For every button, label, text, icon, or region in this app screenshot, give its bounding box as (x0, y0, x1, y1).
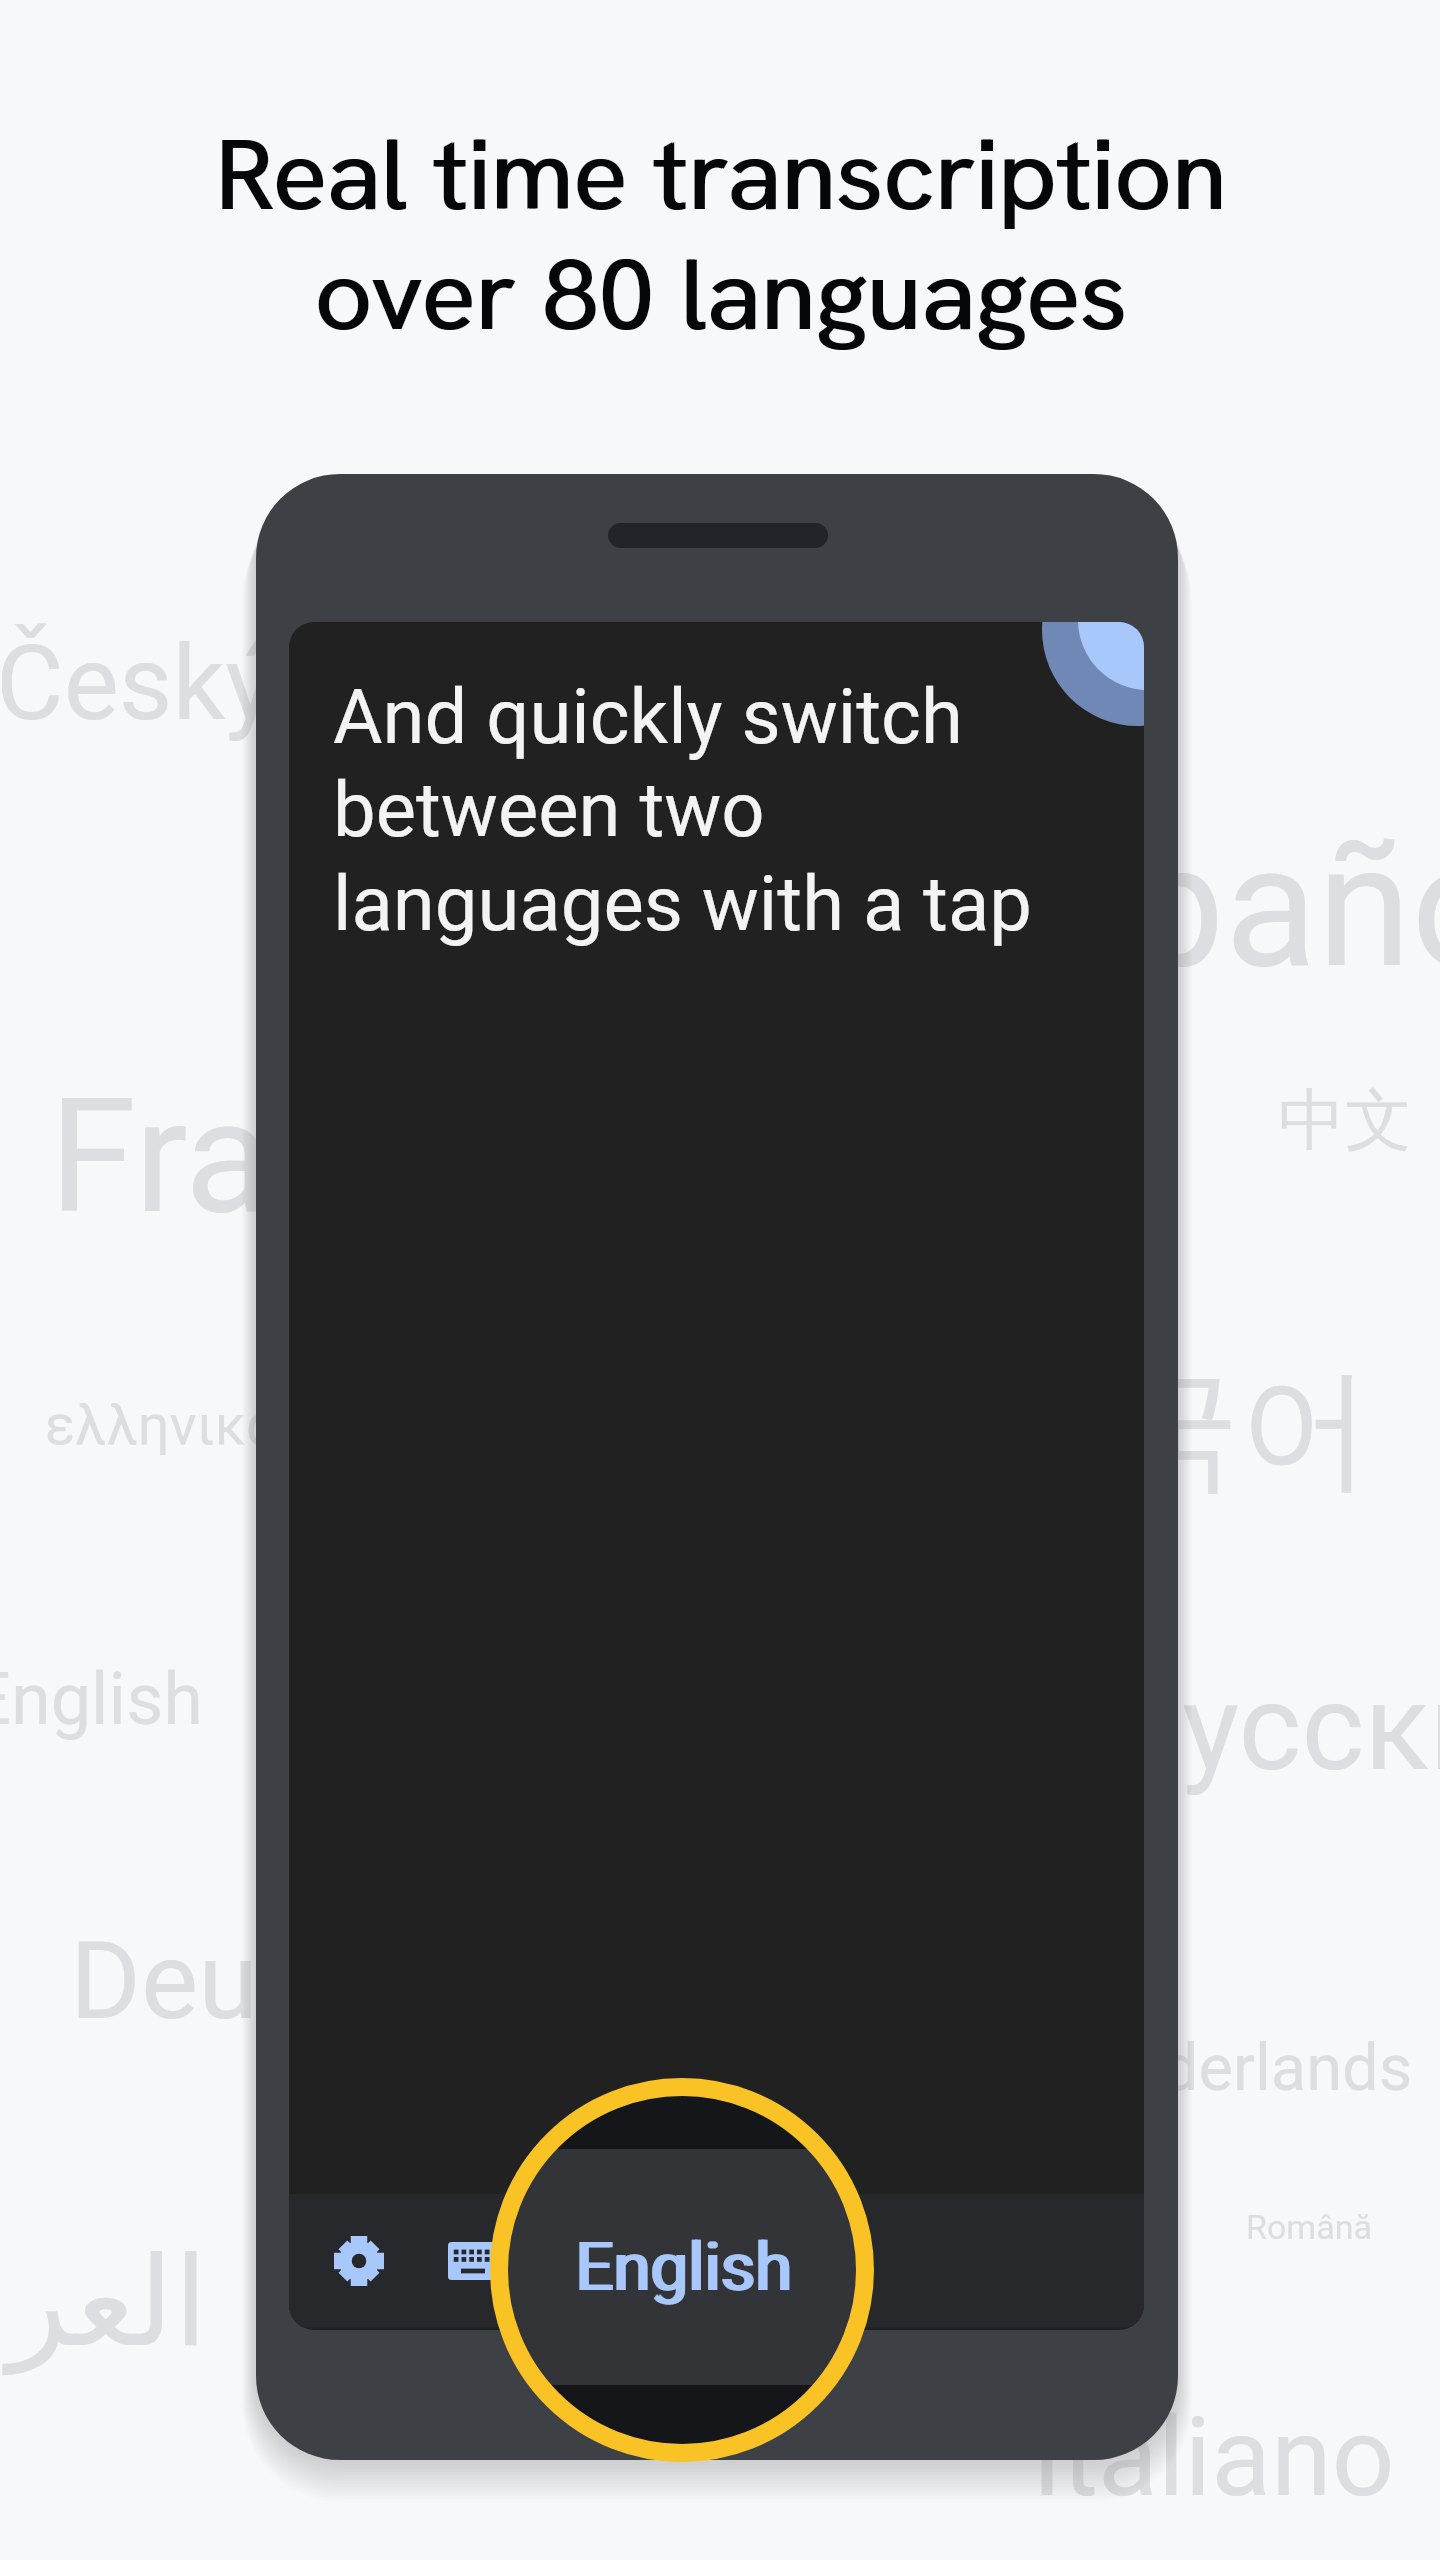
staticText: 中文 (1278, 1078, 1412, 1162)
staticText: And quickly switch between two languages… (333, 672, 1032, 949)
staticText: Español (945, 807, 1440, 1006)
button[interactable]: Settings (314, 2216, 404, 2306)
staticText: 한국어 (976, 1347, 1372, 1513)
staticText: العربية (0, 2230, 208, 2374)
button[interactable]: English language (499, 2087, 865, 2453)
staticText: English (0, 1657, 203, 1741)
staticText: Русский (1106, 1658, 1440, 1799)
staticText: Română (1246, 2207, 1372, 2247)
staticText: English (577, 2228, 794, 2307)
staticText: Français (49, 1064, 647, 1249)
other: Account (1042, 622, 1144, 726)
button[interactable]: Keyboard (428, 2216, 518, 2306)
staticText: Italiano (1032, 2393, 1395, 2522)
staticText: Deutsch (70, 1918, 465, 2045)
staticText: Český (0, 623, 275, 745)
staticText: Nederlands (1081, 2030, 1413, 2106)
staticText: Real time transcription over 80 language… (214, 109, 1226, 359)
staticText: English (574, 2228, 791, 2307)
staticText: ελληνικά (45, 1392, 278, 1458)
staticText: Real time transcription over 80 language… (216, 109, 1228, 359)
